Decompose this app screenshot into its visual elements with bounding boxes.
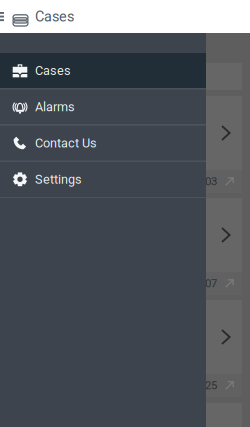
- button[interactable]: 09:07: [0, 198, 242, 295]
- staticText: Settings: [35, 172, 82, 187]
- staticText: Cases: [35, 8, 74, 25]
- button[interactable]: Contact Us: [0, 125, 206, 161]
- staticText: Alarms: [35, 99, 75, 114]
- button[interactable]: Menu: [0, 0, 4, 33]
- staticText: 09:07: [190, 277, 217, 290]
- button[interactable]: Alarms: [0, 89, 206, 125]
- staticText: Contact Us: [35, 136, 97, 150]
- staticText: 08:25: [190, 379, 217, 392]
- staticText: Cases: [35, 63, 71, 78]
- button[interactable]: ...: [0, 300, 242, 397]
- button[interactable]: Cases: [0, 53, 206, 88]
- button[interactable]: 10:03: [0, 96, 242, 193]
- button[interactable]: Settings: [0, 162, 206, 197]
- staticText: 10:03: [190, 175, 217, 188]
